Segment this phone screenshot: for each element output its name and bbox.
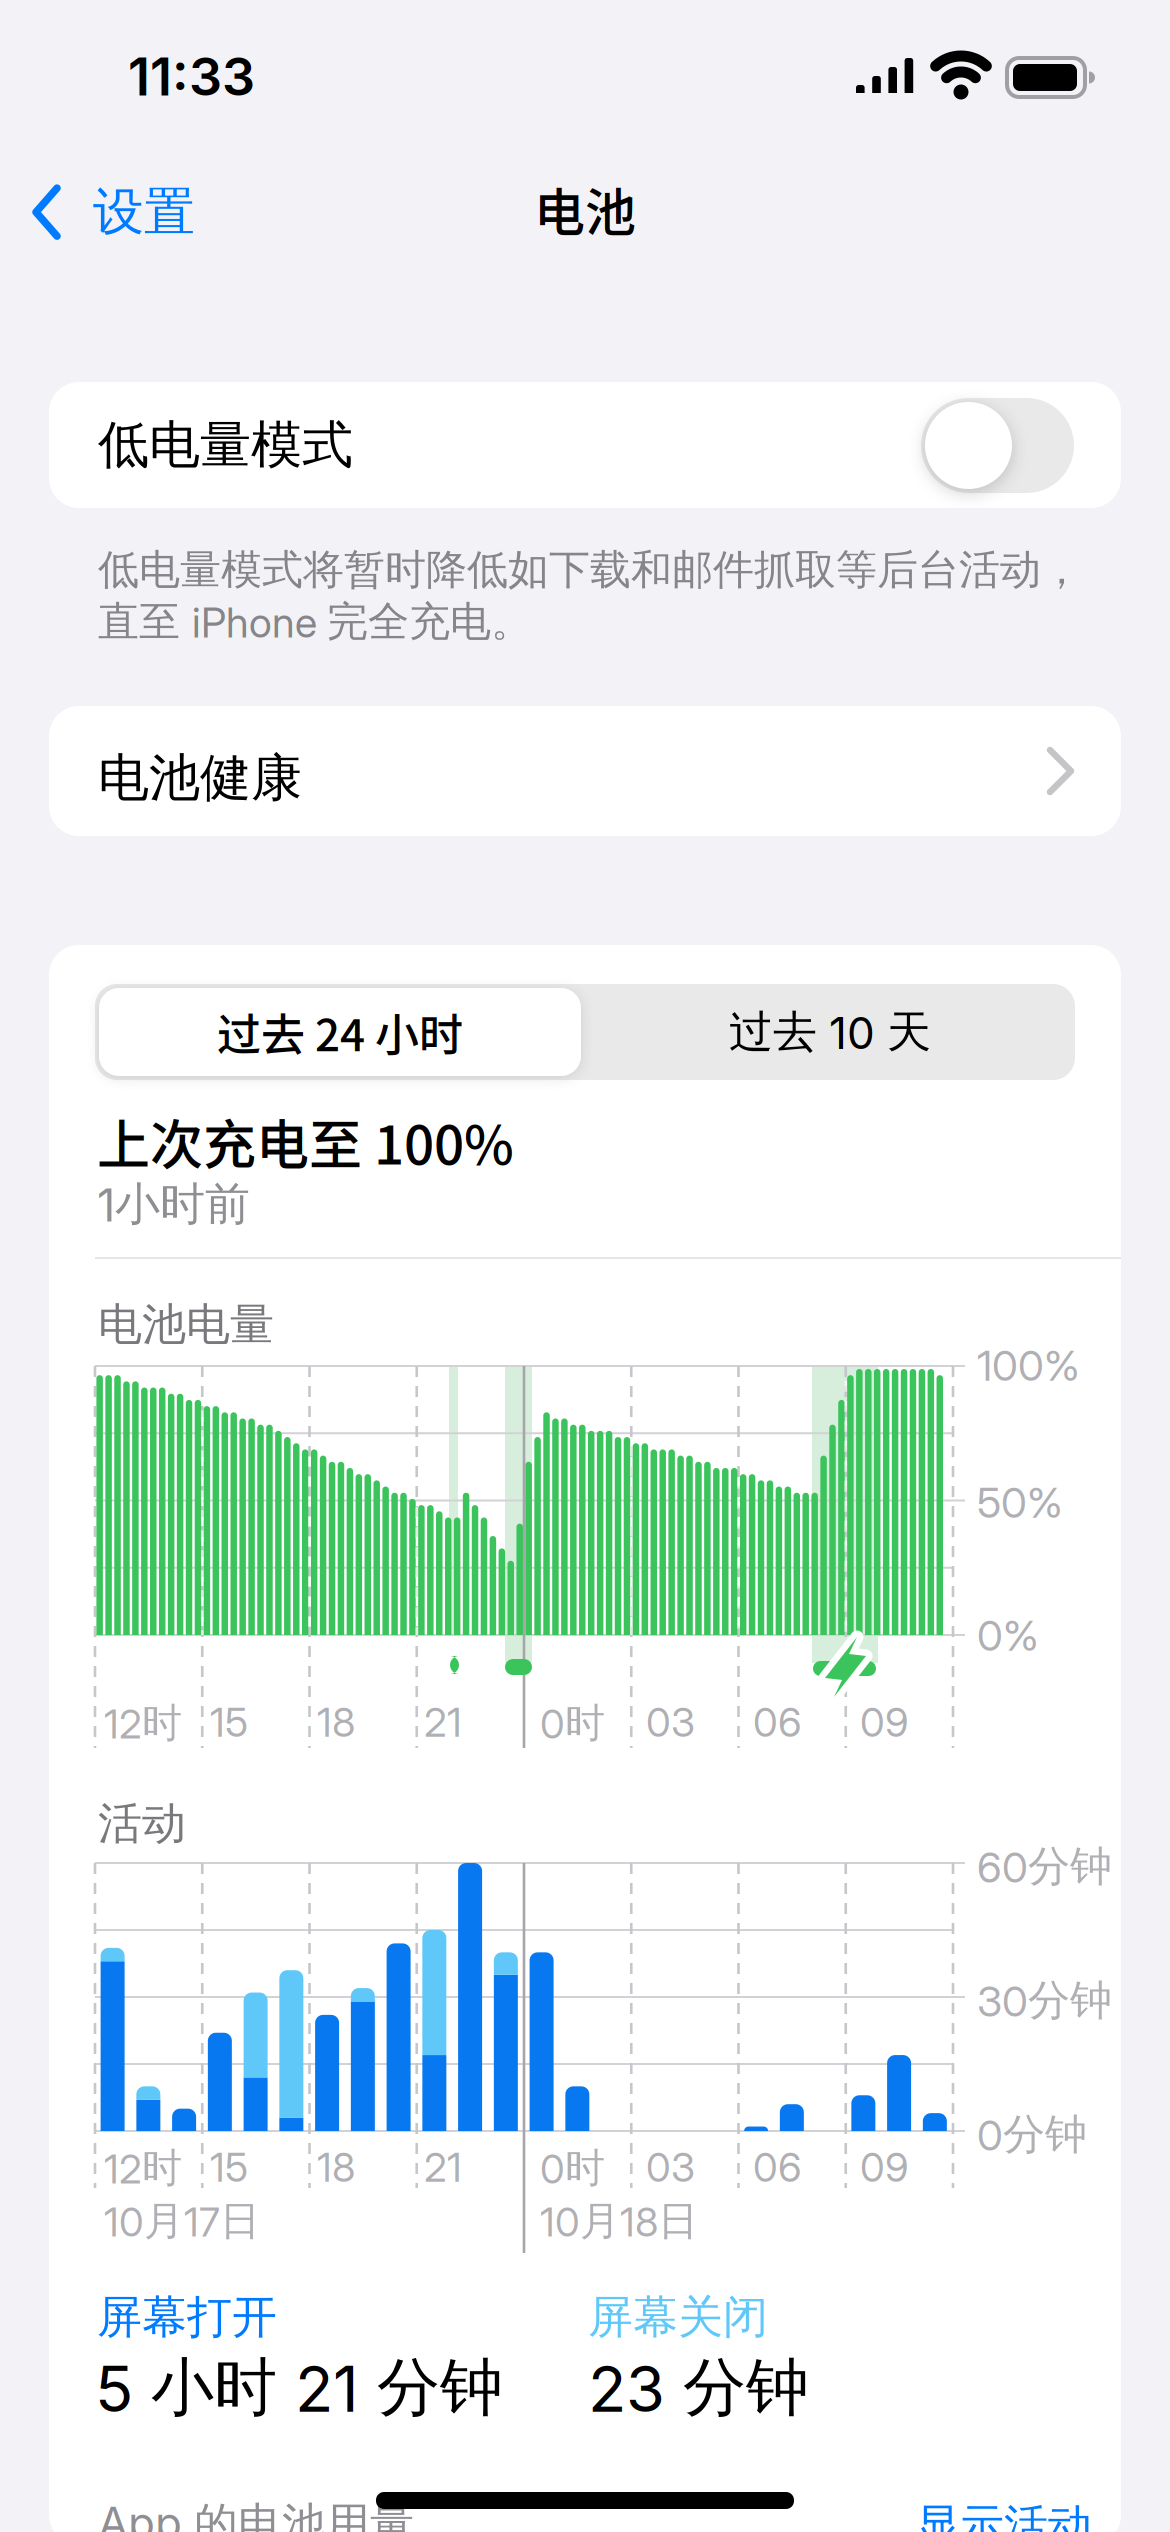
staticText: 上次充电至 100%	[97, 1103, 514, 1180]
staticText: 0%	[977, 1610, 1039, 1661]
staticText: 21	[424, 2143, 462, 2191]
staticText: 电池电量	[98, 1297, 274, 1352]
staticText: 10月18日	[540, 2196, 698, 2246]
staticText: 低电量模式	[98, 413, 353, 477]
staticText: 1小时前	[97, 1176, 250, 1233]
staticText: 18	[317, 1698, 355, 1746]
staticText: 设置	[93, 180, 195, 244]
staticText: 显示活动	[916, 2498, 1092, 2532]
staticText: 06	[753, 1698, 802, 1746]
staticText: 12时	[104, 1698, 182, 1748]
staticText: 09	[860, 2143, 909, 2191]
staticText: 15	[210, 1698, 248, 1746]
staticText: 5 小时 21 分钟	[95, 2348, 503, 2427]
staticText: 0时	[540, 2143, 605, 2193]
staticText: 低电量模式将暂时降低如下载和邮件抓取等后台活动，	[98, 544, 1082, 596]
staticText: 过去 10 天	[729, 1004, 931, 1060]
staticText: 屏幕关闭	[588, 2289, 768, 2346]
staticText: 12时	[104, 2143, 182, 2193]
staticText: 03	[646, 2143, 695, 2191]
staticText: 06	[753, 2143, 802, 2191]
button[interactable]: 显示活动	[916, 2498, 1092, 2532]
staticText: 23 分钟	[588, 2348, 809, 2427]
staticText: 屏幕打开	[97, 2289, 277, 2346]
button[interactable]: 返回设置	[33, 180, 195, 244]
staticText: 过去 24 小时	[217, 1000, 463, 1064]
staticText: 0分钟	[977, 2108, 1087, 2161]
button[interactable]: 电池健康	[49, 706, 1121, 836]
button[interactable]: 过去 10 天	[589, 988, 1071, 1076]
staticText: 60分钟	[977, 1840, 1112, 1893]
staticText: 11:33	[128, 45, 255, 108]
staticText: 03	[646, 1698, 695, 1746]
staticText: 电池健康	[98, 746, 302, 810]
staticText: 15	[210, 2143, 248, 2191]
staticText: 21	[424, 1698, 462, 1746]
staticText: 50%	[977, 1477, 1063, 1528]
staticText: 电池	[534, 172, 636, 246]
staticText: 直至 iPhone 完全充电。	[98, 596, 532, 648]
staticText: 10月17日	[104, 2196, 260, 2246]
button[interactable]: 过去 24 小时	[99, 988, 581, 1076]
staticText: 活动	[98, 1796, 186, 1851]
staticText: 09	[860, 1698, 909, 1746]
staticText: 30分钟	[977, 1974, 1112, 2027]
staticText: 100%	[977, 1340, 1080, 1391]
staticText: 0时	[540, 1698, 605, 1748]
staticText: 18	[317, 2143, 355, 2191]
button[interactable]: 低电量模式开关	[921, 398, 1074, 493]
staticText: App 的电池用量	[98, 2496, 414, 2532]
